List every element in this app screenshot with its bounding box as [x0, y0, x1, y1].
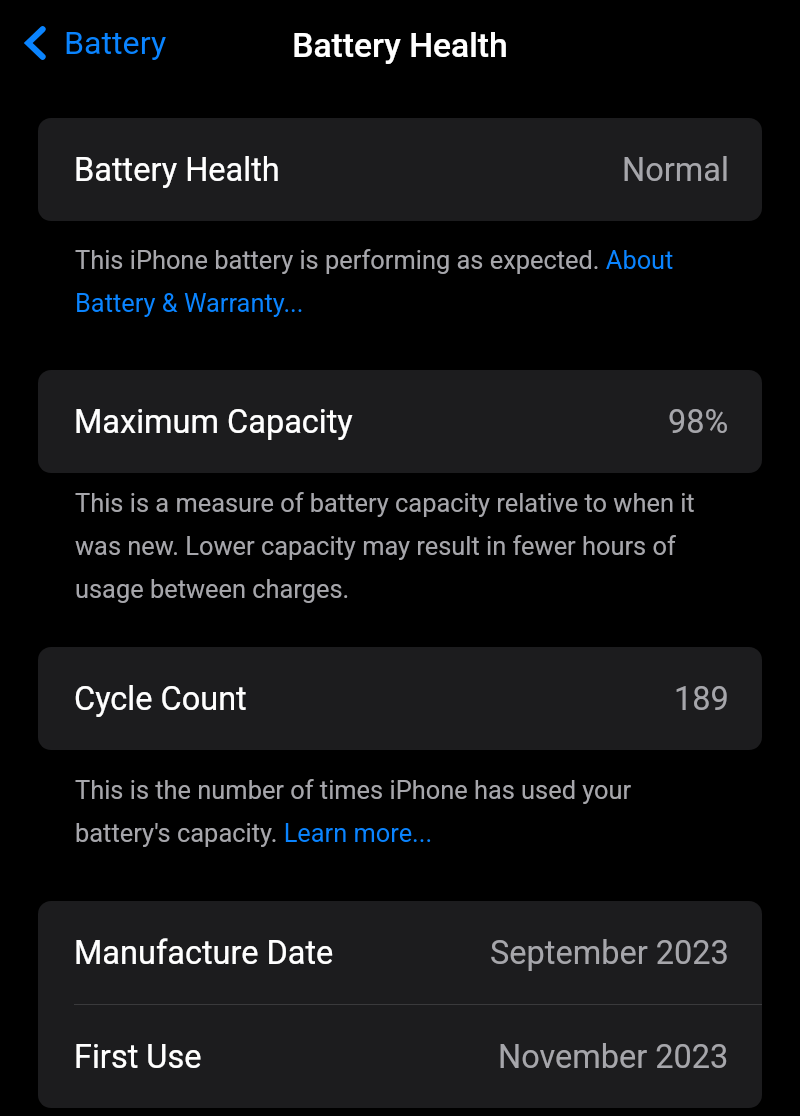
button[interactable]: This iPhone battery is performing as exp…: [75, 235, 715, 321]
button[interactable]: Cycle Count: [38, 647, 762, 750]
staticText: September 2023: [490, 934, 729, 972]
staticText: Battery: [64, 24, 167, 62]
staticText: Cycle Count: [74, 680, 247, 718]
button[interactable]: This is the number of times iPhone has u…: [75, 765, 715, 851]
button[interactable]: First Use: [38, 1005, 762, 1108]
staticText: Battery Health: [0, 26, 800, 65]
staticText: Normal: [622, 151, 729, 189]
button[interactable]: Maximum Capacity: [38, 370, 762, 473]
button[interactable]: Manufacture Date: [38, 901, 762, 1004]
staticText: 98%: [668, 403, 729, 441]
button[interactable]: Battery Health: [38, 118, 762, 221]
staticText: 189: [674, 680, 729, 718]
staticText: First Use: [74, 1038, 202, 1076]
staticText: Battery Health: [74, 151, 280, 189]
staticText: Maximum Capacity: [74, 403, 353, 441]
staticText: This is a measure of battery capacity re…: [75, 478, 715, 607]
staticText: November 2023: [498, 1038, 729, 1076]
staticText: Manufacture Date: [74, 934, 334, 972]
button[interactable]: Back to Battery: [14, 16, 167, 70]
